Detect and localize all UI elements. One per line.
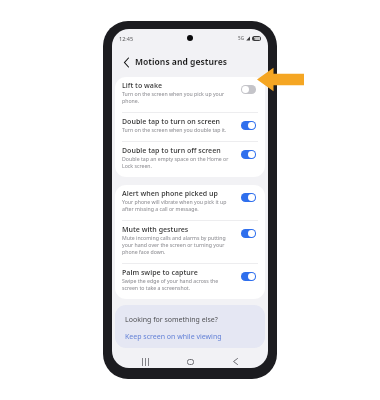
button[interactable]: Switch off	[241, 85, 256, 94]
button[interactable]: Switch on	[241, 272, 256, 281]
staticText: Swipe the edge of your hand across the s…	[122, 278, 231, 292]
button[interactable]: Switch on	[241, 193, 256, 202]
staticText: Mute with gestures	[122, 225, 189, 234]
staticText: Motions and gestures	[135, 56, 227, 68]
button[interactable]: Double tap to turn off screen	[115, 142, 265, 177]
staticText: Your phone will vibrate when you pick it…	[122, 199, 231, 213]
staticText: Double tap to turn on screen	[122, 117, 221, 126]
staticText: Keep screen on while viewing	[125, 332, 222, 341]
staticText: Turn on the screen when you double tap i…	[122, 127, 227, 134]
staticText: Palm swipe to capture	[122, 268, 198, 277]
button[interactable]: Looking for something else?	[115, 305, 265, 348]
staticText: 12:45	[119, 35, 134, 42]
button[interactable]: Switch on	[241, 150, 256, 159]
button[interactable]: Recent apps	[134, 355, 156, 368]
staticText: Double tap an empty space on the Home or…	[122, 156, 231, 170]
staticText: Looking for something else?	[125, 315, 218, 324]
button[interactable]: Palm swipe to capture	[115, 264, 265, 299]
button[interactable]: Switch on	[241, 121, 256, 130]
staticText: 5G	[238, 35, 244, 41]
staticText: Double tap to turn off screen	[122, 146, 221, 155]
button[interactable]: Lift to wake	[115, 77, 265, 112]
button[interactable]: Home	[179, 355, 201, 368]
button[interactable]: Back	[224, 355, 246, 368]
staticText: Mute incoming calls and alarms by puttin…	[122, 235, 231, 256]
staticText: Lift to wake	[122, 81, 163, 90]
button[interactable]: Double tap to turn on screen	[115, 113, 265, 141]
button[interactable]: Navigate back	[118, 54, 134, 70]
button[interactable]: Mute with gestures	[115, 221, 265, 263]
button[interactable]: Alert when phone picked up	[115, 185, 265, 220]
staticText: 100	[254, 36, 260, 41]
staticText: Turn on the screen when you pick up your…	[122, 91, 231, 105]
staticText: Alert when phone picked up	[122, 189, 218, 198]
button[interactable]: Switch on	[241, 229, 256, 238]
